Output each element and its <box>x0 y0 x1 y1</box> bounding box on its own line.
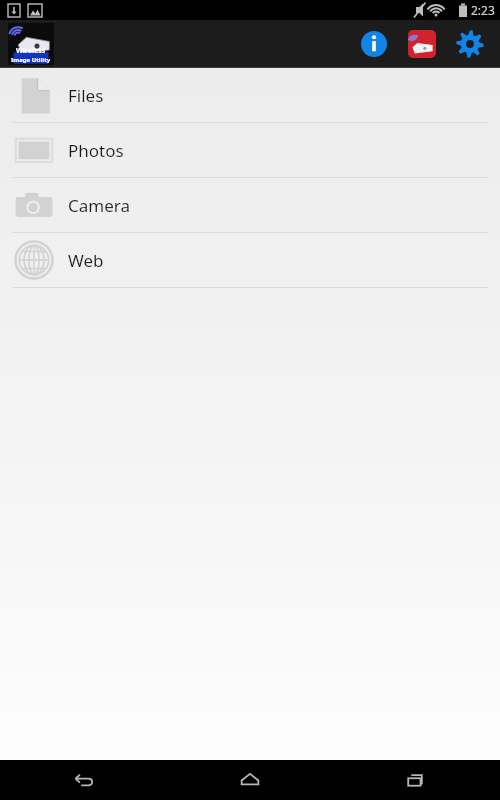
button[interactable]: Web <box>0 233 500 287</box>
button[interactable]: Photos <box>0 123 500 177</box>
button[interactable]: Information <box>350 20 398 68</box>
button[interactable]: Camera <box>0 178 500 232</box>
staticText: 2:23 <box>471 2 495 18</box>
button[interactable]: Wireless Image Utility <box>8 23 54 65</box>
staticText: Camera <box>68 194 130 217</box>
staticText: Image Utility <box>11 56 51 64</box>
button[interactable]: Files <box>0 68 500 122</box>
staticText: Files <box>68 84 104 107</box>
staticText: Wireless <box>16 46 46 56</box>
staticText: Web <box>68 249 104 272</box>
button[interactable]: Back <box>0 760 166 800</box>
button[interactable]: Recent apps <box>333 760 500 800</box>
button[interactable]: Home <box>166 760 333 800</box>
staticText: Photos <box>68 139 124 162</box>
button[interactable]: Settings <box>446 20 494 68</box>
button[interactable]: Select projector <box>398 20 446 68</box>
